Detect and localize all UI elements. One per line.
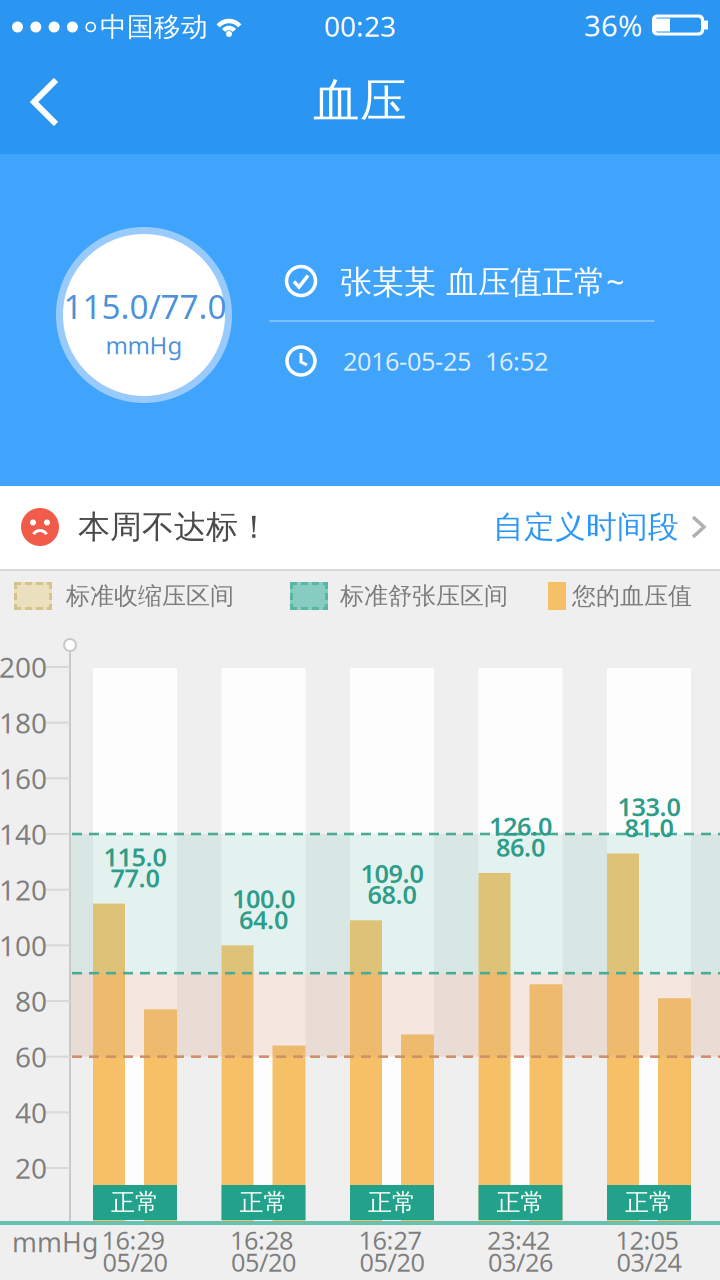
staticText: 36% — [584, 5, 642, 44]
staticText: 16:27 — [358, 1223, 421, 1257]
staticText: 正常 — [368, 1188, 416, 1217]
staticText: 126.0 — [489, 809, 552, 843]
staticText: 正常 — [111, 1188, 159, 1217]
staticText: 正常 — [239, 1188, 287, 1217]
staticText: 自定义时间段 — [493, 508, 679, 546]
staticText: 23:42 — [487, 1223, 550, 1257]
button[interactable]: 自定义时间段 — [493, 485, 707, 569]
staticText: 115.0/77.0 — [63, 284, 226, 328]
staticText: 64.0 — [239, 902, 288, 936]
staticText: 标准收缩压区间 — [66, 581, 234, 611]
staticText: 12:05 — [615, 1223, 678, 1257]
staticText: 正常 — [496, 1188, 544, 1217]
staticText: 133.0 — [617, 790, 680, 823]
staticText: 2016-05-25 16:52 — [343, 344, 548, 378]
staticText: 血压 — [313, 72, 407, 130]
staticText: 68.0 — [367, 877, 416, 911]
staticText: 16:28 — [230, 1223, 293, 1257]
staticText: 60 — [15, 1038, 47, 1075]
staticText: 120 — [0, 871, 47, 908]
staticText: 05/20 — [359, 1245, 424, 1279]
staticText: 03/24 — [616, 1245, 681, 1279]
staticText: 本周不达标！ — [78, 507, 270, 547]
staticText: 200 — [0, 648, 47, 686]
staticText: mmHg — [105, 329, 182, 361]
staticText: 00:23 — [324, 7, 396, 45]
button[interactable]: Back — [5, 62, 85, 142]
staticText: 中国移动 — [100, 11, 208, 43]
staticText: 109.0 — [360, 856, 423, 890]
staticText: 05/20 — [102, 1245, 167, 1279]
staticText: 正常 — [625, 1188, 673, 1217]
staticText: 16:29 — [101, 1223, 164, 1257]
staticText: 100 — [0, 927, 47, 964]
staticText: 80 — [15, 982, 47, 1020]
staticText: 115.0 — [103, 840, 166, 873]
staticText: 100.0 — [232, 881, 295, 915]
staticText: 77.0 — [110, 861, 159, 894]
staticText: 86.0 — [496, 830, 545, 864]
staticText: 81.0 — [624, 811, 673, 844]
staticText: 40 — [15, 1094, 47, 1131]
staticText: mmHg — [12, 1224, 98, 1260]
staticText: 140 — [0, 815, 47, 853]
staticText: 20 — [15, 1149, 47, 1187]
staticText: 05/20 — [231, 1245, 296, 1279]
staticText: 180 — [0, 704, 47, 741]
staticText: 张某某 血压值正常~ — [340, 260, 624, 302]
staticText: 标准舒张压区间 — [340, 581, 508, 611]
staticText: 您的血压值 — [572, 581, 692, 611]
staticText: 03/26 — [488, 1245, 553, 1279]
staticText: 160 — [0, 760, 47, 797]
